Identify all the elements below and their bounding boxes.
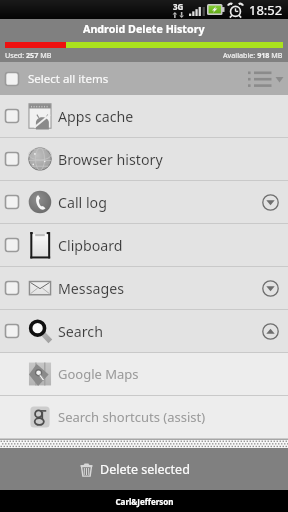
button[interactable]: Browser history bbox=[0, 138, 288, 180]
button[interactable]: Expand Messages bbox=[257, 275, 283, 301]
staticText: Used: 257 MB bbox=[5, 50, 52, 60]
button[interactable]: Sort order bbox=[244, 62, 288, 95]
staticText: Call log bbox=[58, 193, 107, 212]
staticText: Google Maps bbox=[58, 365, 139, 383]
staticText: Messages bbox=[58, 279, 124, 298]
staticText: Delete selected bbox=[100, 461, 190, 478]
staticText: Search shortcuts (assist) bbox=[58, 408, 206, 426]
staticText: Apps cache bbox=[58, 107, 134, 126]
button[interactable]: Expand Search bbox=[257, 318, 283, 344]
button[interactable]: Select all items bbox=[0, 62, 288, 95]
staticText: 3G bbox=[173, 1, 184, 12]
staticText: Carl&Jefferson bbox=[115, 496, 174, 507]
staticText: Search bbox=[58, 322, 103, 341]
button[interactable]: Search shortcuts (assist) bbox=[0, 396, 288, 438]
staticText: Browser history bbox=[58, 150, 163, 169]
button[interactable]: Expand Call log bbox=[257, 189, 283, 215]
staticText: Android Delete History bbox=[83, 22, 205, 37]
staticText: 18:52 bbox=[249, 1, 283, 19]
button[interactable]: Delete selected bbox=[0, 448, 288, 490]
button[interactable]: Call log bbox=[0, 181, 288, 223]
staticText: Available: 918 MB bbox=[223, 50, 283, 60]
staticText: Select all items bbox=[28, 71, 109, 87]
button[interactable]: Messages bbox=[0, 267, 288, 309]
button[interactable]: Apps cache bbox=[0, 95, 288, 137]
staticText: Clipboard bbox=[58, 236, 123, 255]
button[interactable]: Google Maps bbox=[0, 353, 288, 395]
button[interactable]: Clipboard bbox=[0, 224, 288, 266]
button[interactable]: Search bbox=[0, 310, 288, 352]
